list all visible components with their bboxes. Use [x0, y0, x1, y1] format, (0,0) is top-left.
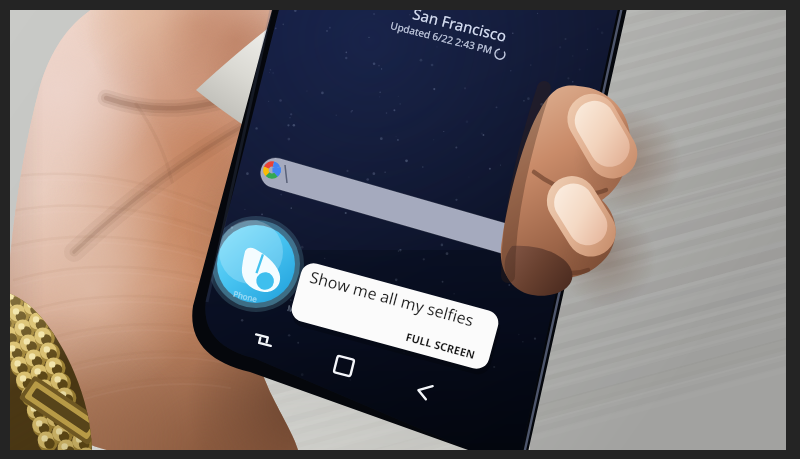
button[interactable] [0, 0, 800, 459]
